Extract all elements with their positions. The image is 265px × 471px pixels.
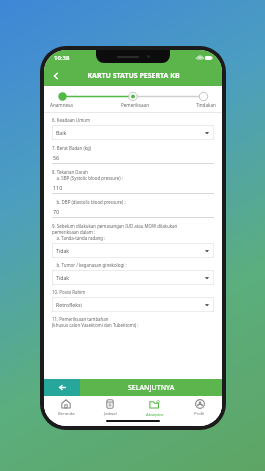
button[interactable]: Back <box>48 68 64 84</box>
staticText: 7. Berat Badan (kg) <box>52 145 92 151</box>
staticText: 10:38 <box>54 54 70 62</box>
staticText: pemeriksaan dalam : <box>52 229 96 235</box>
button[interactable]: 56 <box>52 154 214 164</box>
staticText: Anamnesa <box>50 102 73 108</box>
staticText: Akseptor <box>146 412 164 418</box>
button[interactable]: 70 <box>52 208 214 218</box>
staticText: SELANJUTNYA <box>128 383 175 393</box>
staticText: Profil <box>194 411 205 417</box>
staticText: 10. Posisi Rahim <box>52 289 86 295</box>
staticText: 70 <box>53 208 60 215</box>
button[interactable]: Tidak <box>52 243 214 258</box>
staticText: 6. Keadaan Umum <box>52 117 91 123</box>
staticText: Pemeriksaan <box>121 102 149 108</box>
staticText: (khusus calon Vasektomi dan Tubektomi) : <box>52 322 139 328</box>
button[interactable]: Profil <box>177 396 222 420</box>
button[interactable]: Previous <box>44 379 80 396</box>
button[interactable]: Baik <box>52 125 214 140</box>
staticText: 110 <box>53 184 63 191</box>
staticText: KARTU STATUS PESERTA KB <box>87 71 180 81</box>
button[interactable]: Beranda <box>44 396 88 420</box>
staticText: 9. Sebelum dilakukan pemasangan IUD atau… <box>52 223 178 229</box>
button[interactable]: Akseptor <box>132 396 177 420</box>
button[interactable]: 110 <box>52 184 214 194</box>
staticText: Beranda <box>58 411 75 417</box>
button[interactable]: Jadwal <box>88 396 132 420</box>
staticText: Tindakan <box>196 102 216 108</box>
staticText: a. Tanda-tanda radang : <box>52 235 106 241</box>
button[interactable]: Tidak <box>52 270 214 285</box>
staticText: Baik <box>56 129 67 136</box>
button[interactable]: SELANJUTNYA <box>80 379 222 396</box>
staticText: Retrofleksi <box>56 301 82 308</box>
staticText: Tidak <box>56 274 70 281</box>
staticText: a. SBP (Systolic blood pressure) : <box>52 175 123 181</box>
staticText: 56 <box>53 154 60 161</box>
staticText: b. Tumor / keganasan ginekologi : <box>52 262 127 268</box>
staticText: 8. Tekanan Darah <box>52 169 88 175</box>
button[interactable]: Retrofleksi <box>52 297 214 312</box>
staticText: Tidak <box>56 247 70 254</box>
staticText: 11. Pemeriksaan tambahan <box>52 316 109 322</box>
staticText: b. DBP (diastolic blood pressure) : <box>52 199 126 205</box>
staticText: Jadwal <box>104 411 117 417</box>
